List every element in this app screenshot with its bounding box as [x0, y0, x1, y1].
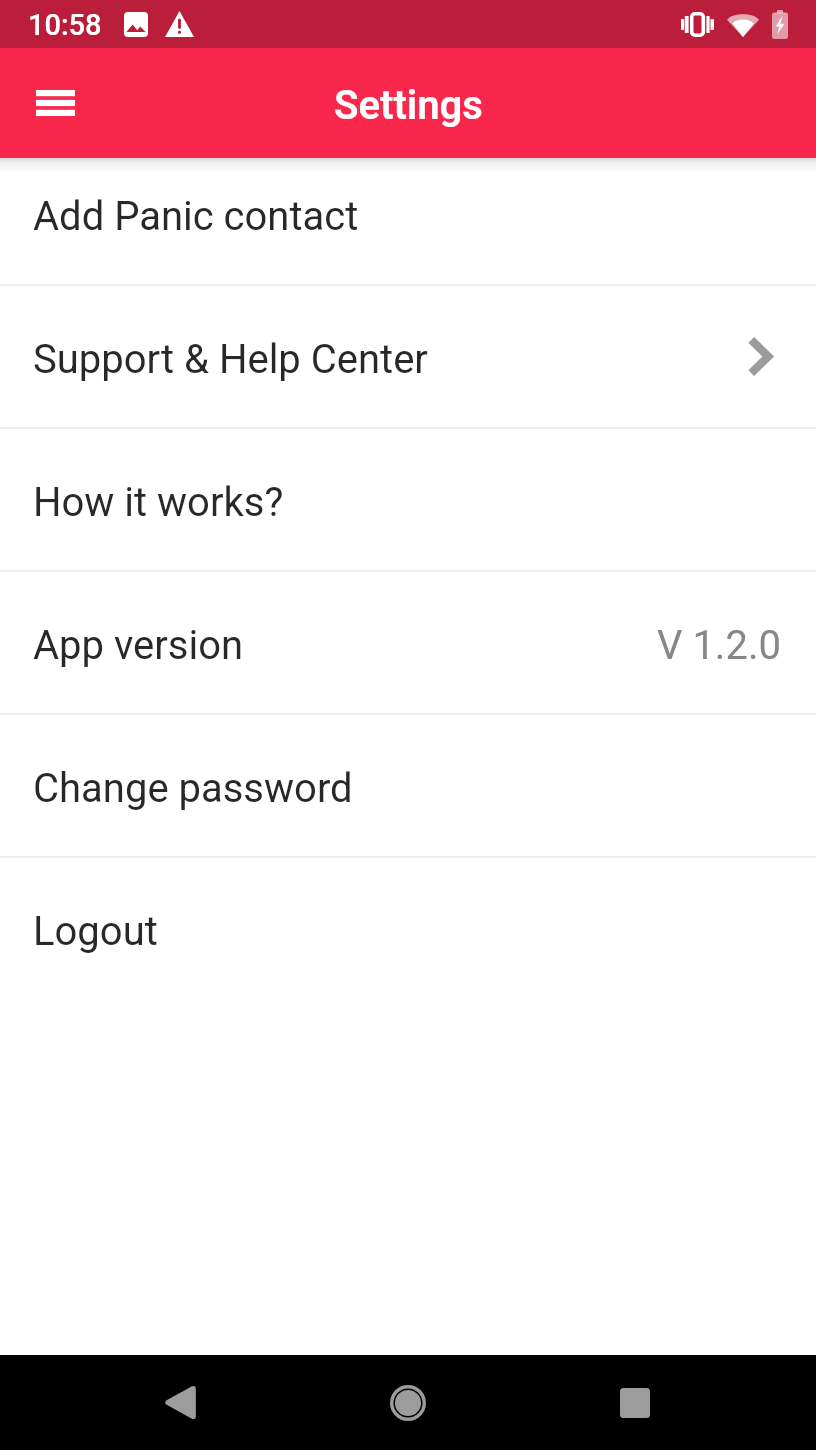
button[interactable]: Change password	[0, 715, 816, 856]
staticText: App version	[33, 622, 244, 669]
button[interactable]: App version	[0, 572, 816, 713]
staticText: 10:58	[28, 8, 102, 42]
button[interactable]: Home	[354, 1355, 462, 1450]
button[interactable]: Support & Help Center	[0, 286, 816, 427]
staticText: Logout	[33, 908, 158, 955]
staticText: Change password	[33, 765, 353, 812]
staticText: Settings	[334, 82, 483, 129]
staticText: V 1.2.0	[657, 622, 781, 669]
button[interactable]: Logout	[0, 858, 816, 999]
button[interactable]: Open navigation menu	[13, 61, 97, 145]
button[interactable]: How it works?	[0, 429, 816, 570]
button[interactable]: Recent apps	[580, 1355, 688, 1450]
button[interactable]: Add Panic contact	[0, 158, 816, 284]
staticText: Add Panic contact	[33, 193, 359, 240]
staticText: Support & Help Center	[33, 336, 428, 383]
button[interactable]: Back	[128, 1355, 236, 1450]
staticText: How it works?	[33, 479, 284, 526]
